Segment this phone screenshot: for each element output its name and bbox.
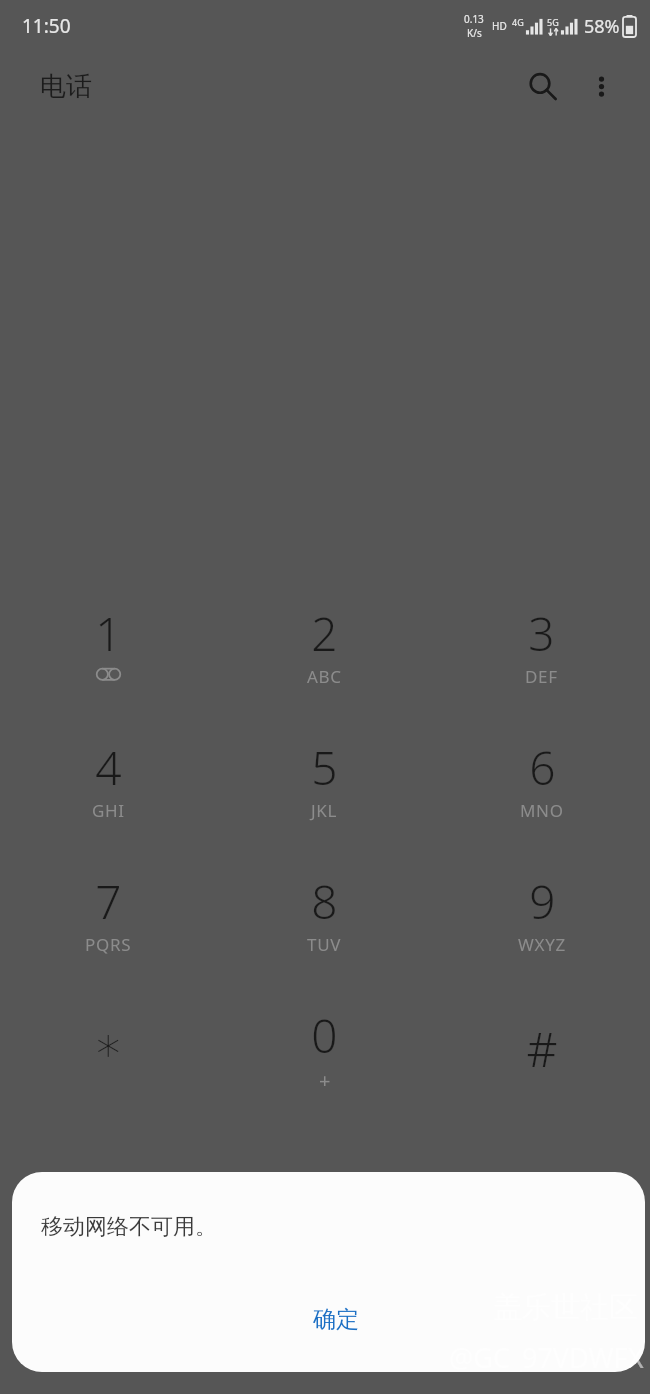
staticText: +	[319, 1067, 331, 1094]
staticText: 3	[528, 602, 555, 665]
staticText: 5G	[547, 16, 559, 28]
button[interactable]: 8	[216, 864, 433, 998]
staticText: 0.13	[464, 12, 484, 26]
staticText: 6	[529, 736, 556, 799]
staticText: WXYZ	[518, 933, 566, 956]
button[interactable]: 6	[433, 730, 650, 864]
staticText: 8	[311, 870, 338, 933]
staticText: 5	[311, 736, 338, 799]
button[interactable]: More options	[579, 64, 623, 108]
staticText: #	[526, 1016, 558, 1081]
button[interactable]: 1	[0, 596, 216, 730]
button[interactable]: 5	[216, 730, 433, 864]
staticText: 9	[529, 870, 556, 933]
button[interactable]: 2	[216, 596, 433, 730]
staticText: MNO	[520, 799, 564, 822]
staticText: DEF	[525, 665, 558, 688]
button[interactable]: 7	[0, 864, 216, 998]
staticText: 确定	[313, 1305, 359, 1334]
staticText: 电话	[40, 70, 92, 103]
staticText: JKL	[311, 799, 338, 822]
button[interactable]: Search	[518, 62, 566, 110]
staticText: GHI	[92, 799, 125, 822]
staticText: 2	[311, 602, 338, 665]
staticText: PQRS	[85, 933, 132, 956]
staticText: ∗	[93, 1016, 124, 1072]
staticText: 4	[95, 736, 122, 799]
staticText: TUV	[307, 933, 342, 956]
staticText: ABC	[307, 665, 342, 688]
staticText: HD	[492, 19, 507, 33]
staticText: 7	[95, 870, 122, 933]
button[interactable]: 0	[216, 998, 433, 1126]
staticText: @GC_97VDWFX	[449, 1339, 644, 1376]
staticText: 移动网络不可用。	[41, 1213, 217, 1241]
button[interactable]: #	[433, 998, 650, 1126]
button[interactable]: 4	[0, 730, 216, 864]
staticText: 0	[311, 1004, 338, 1067]
button[interactable]: 3	[433, 596, 650, 730]
button[interactable]: 确定	[282, 1290, 390, 1348]
staticText: 11:50	[22, 13, 71, 39]
staticText: K/s	[467, 26, 482, 40]
staticText: 1	[95, 602, 122, 665]
button[interactable]: 9	[433, 864, 650, 998]
staticText: 58%	[584, 14, 620, 39]
staticText: 4G	[512, 16, 524, 28]
